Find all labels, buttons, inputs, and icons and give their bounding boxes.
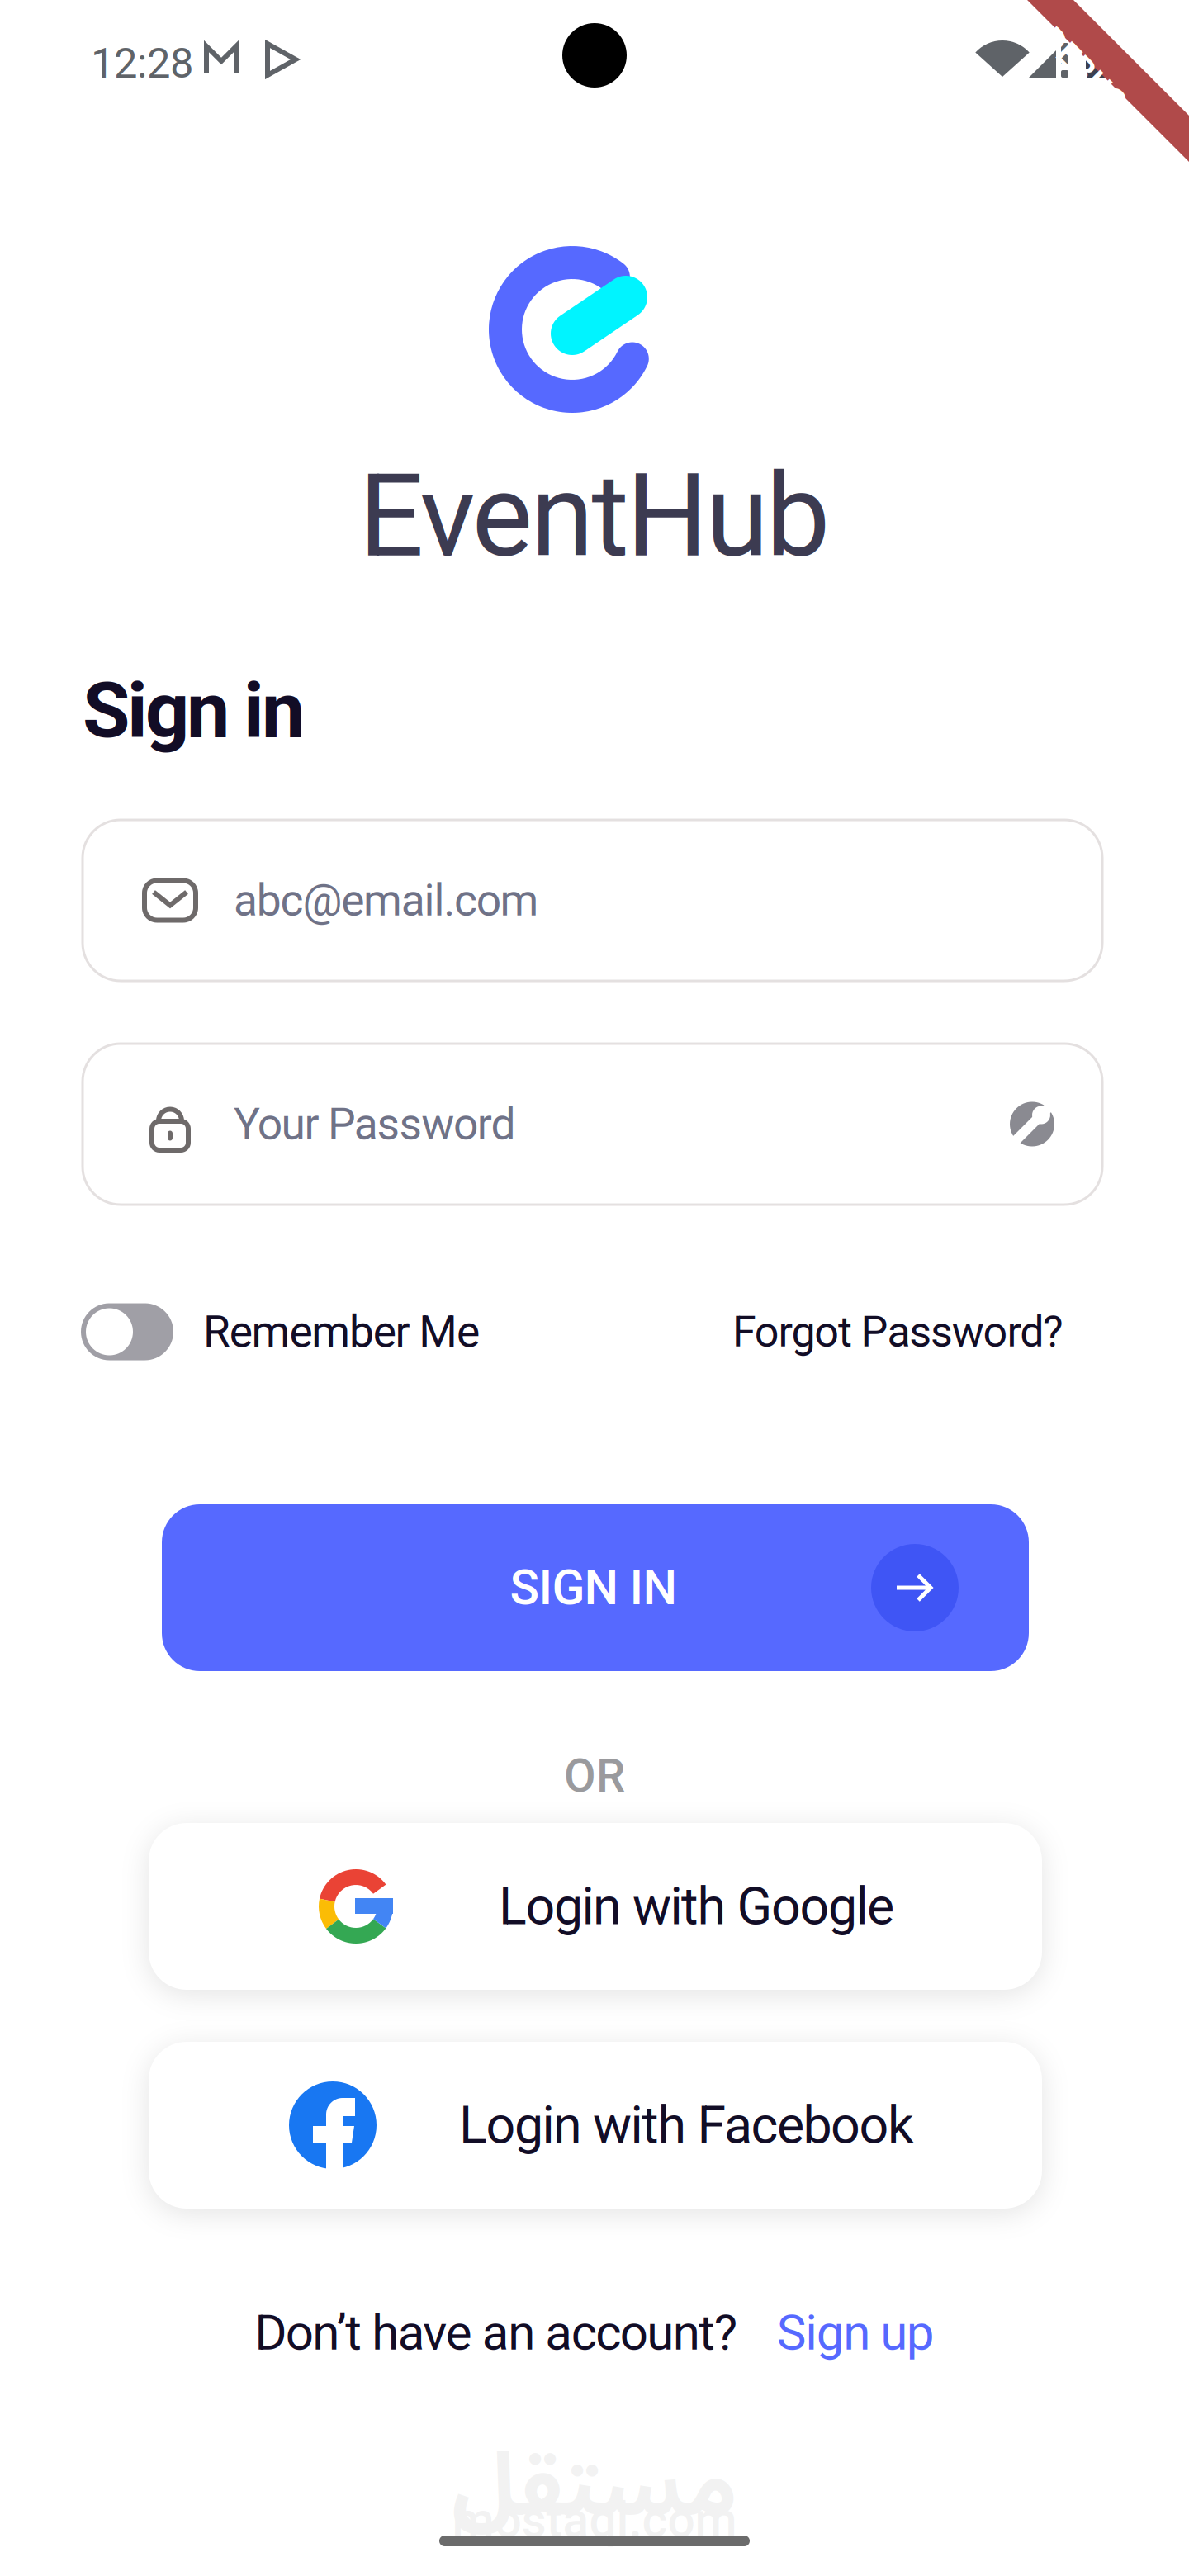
staticText: EventHub	[359, 449, 830, 583]
staticText: DEBUG	[1031, 51, 1137, 90]
staticText: mostaql.com	[452, 2492, 737, 2549]
button[interactable]: Login with Facebook	[149, 2042, 1042, 2209]
staticText: 12:28	[91, 39, 193, 88]
button[interactable]: Forgot Password?	[732, 1307, 1063, 1357]
button[interactable]: Sign up	[777, 2304, 935, 2362]
staticText: Forgot Password?	[732, 1307, 1063, 1357]
staticText: Login with Google	[499, 1876, 894, 1937]
staticText: SIGN IN	[510, 1559, 677, 1616]
staticText: OR	[564, 1749, 625, 1803]
staticText: Remember Me	[203, 1306, 480, 1358]
staticText: مستقل	[451, 2396, 738, 2576]
button[interactable]: SIGN IN	[162, 1504, 1029, 1671]
staticText: Login with Facebook	[459, 2095, 914, 2156]
staticText: Sign up	[777, 2304, 935, 2362]
staticText: abc@email.com	[234, 875, 539, 926]
staticText: Don’t have an account?	[254, 2304, 737, 2362]
staticText: Your Password	[234, 1098, 516, 1150]
button[interactable]: Login with Google	[149, 1823, 1042, 1990]
button[interactable]: Remember Me	[81, 1303, 480, 1360]
staticText: Sign in	[83, 665, 305, 756]
